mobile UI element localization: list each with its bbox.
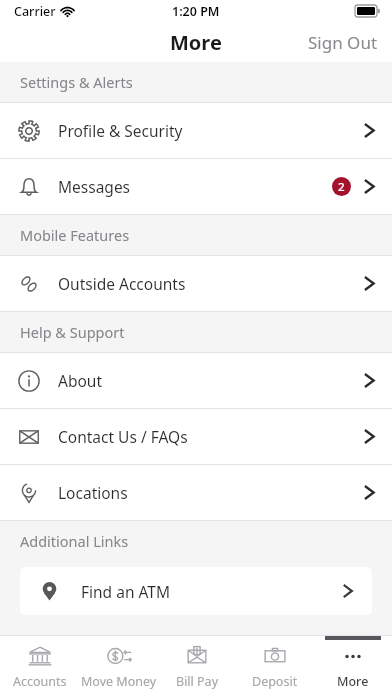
button[interactable]: Accounts bbox=[0, 636, 79, 696]
staticText: Additional Links bbox=[20, 531, 129, 551]
staticText: Mobile Features bbox=[20, 225, 130, 245]
other: Open bbox=[363, 428, 376, 445]
button[interactable]: Profile & Security bbox=[0, 103, 392, 158]
staticText: About bbox=[58, 370, 102, 391]
other: Open bbox=[342, 583, 354, 599]
staticText: More bbox=[170, 29, 222, 56]
staticText: Carrier bbox=[14, 3, 56, 20]
other: Open bbox=[363, 122, 376, 139]
button[interactable]: Sign Out bbox=[294, 23, 392, 62]
other: Open bbox=[363, 275, 376, 292]
staticText: Contact Us / FAQs bbox=[58, 426, 188, 447]
staticText: Bill Pay bbox=[176, 673, 219, 690]
button[interactable]: Outside Accounts bbox=[0, 256, 392, 311]
button[interactable]: More bbox=[314, 636, 392, 696]
staticText: Find an ATM bbox=[81, 581, 170, 602]
button[interactable]: Move Money bbox=[79, 636, 158, 696]
staticText: Profile & Security bbox=[58, 120, 183, 141]
other: Open bbox=[363, 484, 376, 501]
staticText: Settings & Alerts bbox=[20, 72, 133, 92]
staticText: 2 bbox=[338, 179, 345, 195]
staticText: Deposit bbox=[252, 673, 298, 690]
staticText: Move Money bbox=[81, 673, 157, 690]
staticText: Locations bbox=[58, 482, 128, 503]
staticText: More bbox=[337, 673, 369, 690]
staticText: Outside Accounts bbox=[58, 273, 186, 294]
staticText: Messages bbox=[58, 176, 131, 197]
button[interactable]: About bbox=[0, 353, 392, 408]
staticText: Help & Support bbox=[20, 322, 125, 342]
button[interactable]: Locations bbox=[0, 465, 392, 520]
button[interactable]: Contact Us / FAQs bbox=[0, 409, 392, 464]
staticText: Accounts bbox=[13, 673, 67, 690]
other: Open bbox=[363, 372, 376, 389]
button[interactable]: Messages bbox=[0, 159, 392, 214]
staticText: Sign Out bbox=[308, 31, 378, 54]
button[interactable]: Deposit bbox=[236, 636, 314, 696]
staticText: 1:20 PM bbox=[172, 3, 220, 20]
button[interactable]: Find an ATM bbox=[20, 567, 372, 615]
button[interactable]: Bill Pay bbox=[158, 636, 236, 696]
other: Open bbox=[363, 178, 376, 195]
